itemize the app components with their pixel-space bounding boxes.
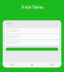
- button[interactable]: Tab: [3, 62, 22, 67]
- staticText: Track Today: [21, 4, 43, 9]
- button[interactable]: Tab: [22, 62, 42, 67]
- button[interactable]: [6, 48, 58, 51]
- button[interactable]: Tab: [42, 62, 61, 67]
